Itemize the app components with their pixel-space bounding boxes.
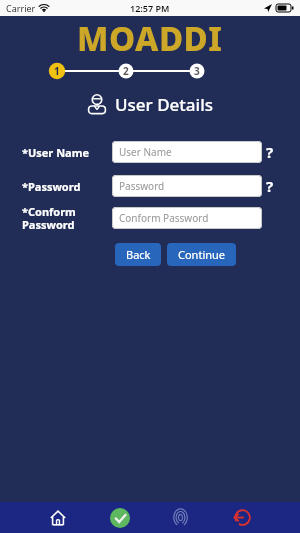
staticText: Continue (178, 247, 226, 262)
staticText: Carrier (6, 2, 36, 14)
staticText: MOADDI (77, 16, 223, 56)
button[interactable] (110, 508, 130, 528)
button[interactable]: Continue (167, 243, 236, 266)
staticText: *Password (22, 179, 81, 194)
staticText: *User Name (22, 145, 89, 160)
staticText: Password (119, 179, 165, 193)
button[interactable]: Back (115, 243, 161, 266)
button[interactable] (234, 509, 251, 526)
staticText: ? (266, 142, 274, 162)
staticText: 1 (54, 64, 60, 78)
staticText: 12:57 PM (130, 2, 170, 14)
staticText: ? (266, 176, 274, 196)
staticText: User Name (119, 145, 172, 159)
button[interactable]: User Name (112, 141, 262, 163)
staticText: 3 (194, 64, 200, 78)
staticText: 2 (123, 64, 129, 78)
button[interactable] (49, 509, 67, 527)
button[interactable] (171, 508, 190, 527)
staticText: Conform Password (119, 211, 209, 225)
button[interactable]: Password (112, 175, 262, 197)
staticText: *Conform Password (22, 204, 76, 232)
staticText: User Details (115, 93, 214, 116)
staticText: Back (126, 247, 151, 262)
button[interactable]: Conform Password (112, 207, 262, 229)
